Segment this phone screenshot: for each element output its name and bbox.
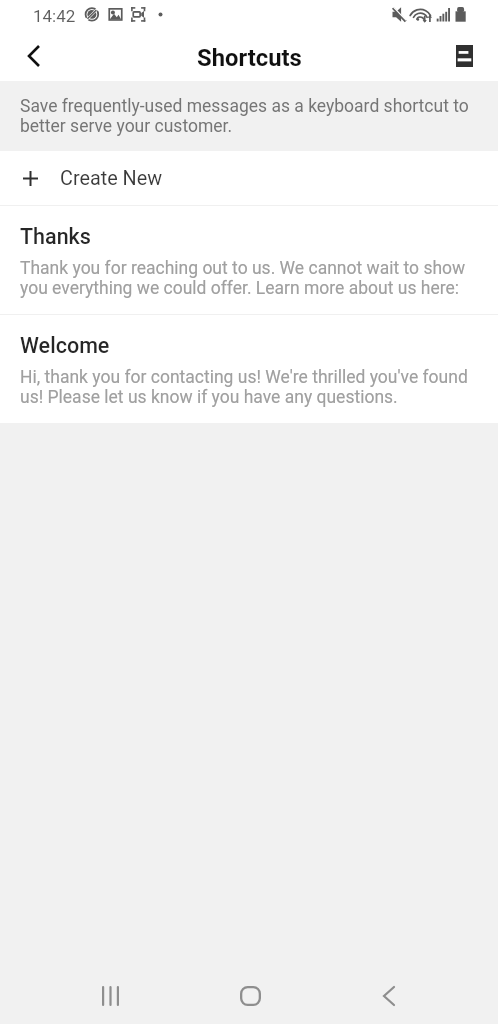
staticText: Create New <box>60 167 163 190</box>
staticText: Hi, thank you for contacting us! We're t… <box>20 367 480 407</box>
staticText: Save frequently-used messages as a keybo… <box>20 96 474 136</box>
staticText: Welcome <box>20 333 110 358</box>
button[interactable]: Home <box>222 975 278 1016</box>
button[interactable]: Back <box>361 975 417 1016</box>
button[interactable]: Options <box>440 36 498 81</box>
button[interactable]: Welcome <box>0 315 498 423</box>
button[interactable]: Recent apps <box>82 975 138 1016</box>
staticText: Shortcuts <box>197 44 302 72</box>
button[interactable]: Create New <box>0 151 498 205</box>
button[interactable]: Navigate up <box>0 36 58 81</box>
staticText: 14:42 <box>33 6 76 26</box>
staticText: Thanks <box>20 224 91 249</box>
button[interactable]: Thanks <box>0 206 498 314</box>
staticText: Thank you for reaching out to us. We can… <box>20 258 480 298</box>
